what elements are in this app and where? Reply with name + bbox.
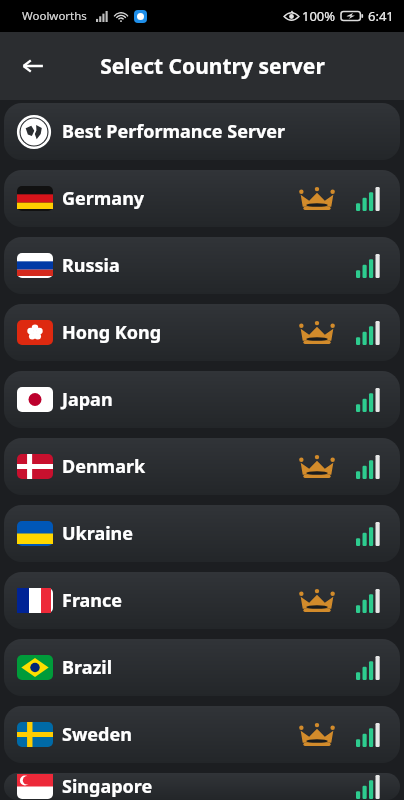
- button[interactable]: Japan: [4, 371, 400, 428]
- staticText: 100%: [302, 7, 336, 25]
- button[interactable]: Best Performance Server: [4, 103, 400, 160]
- button[interactable]: Singapore: [4, 773, 400, 800]
- button[interactable]: Brazil: [4, 639, 400, 696]
- staticText: Sweden: [62, 722, 132, 747]
- button[interactable]: Russia: [4, 237, 400, 294]
- button[interactable]: France: [4, 572, 400, 629]
- staticText: France: [62, 588, 123, 613]
- staticText: Denmark: [62, 454, 146, 479]
- staticText: Singapore: [62, 774, 153, 799]
- staticText: Germany: [62, 186, 145, 211]
- staticText: 6:41: [368, 7, 394, 25]
- button[interactable]: Sweden: [4, 706, 400, 763]
- staticText: Russia: [62, 253, 120, 278]
- button[interactable]: Hong Kong: [4, 304, 400, 361]
- button[interactable]: Ukraine: [4, 505, 400, 562]
- staticText: Ukraine: [62, 521, 134, 546]
- staticText: Brazil: [62, 655, 113, 680]
- staticText: Select Country server: [100, 52, 325, 81]
- button[interactable]: Back: [12, 45, 54, 87]
- staticText: Woolworths: [22, 8, 87, 24]
- staticText: Japan: [62, 387, 113, 412]
- button[interactable]: Denmark: [4, 438, 400, 495]
- button[interactable]: Germany: [4, 170, 400, 227]
- staticText: Best Performance Server: [62, 119, 286, 144]
- staticText: Hong Kong: [62, 320, 162, 345]
